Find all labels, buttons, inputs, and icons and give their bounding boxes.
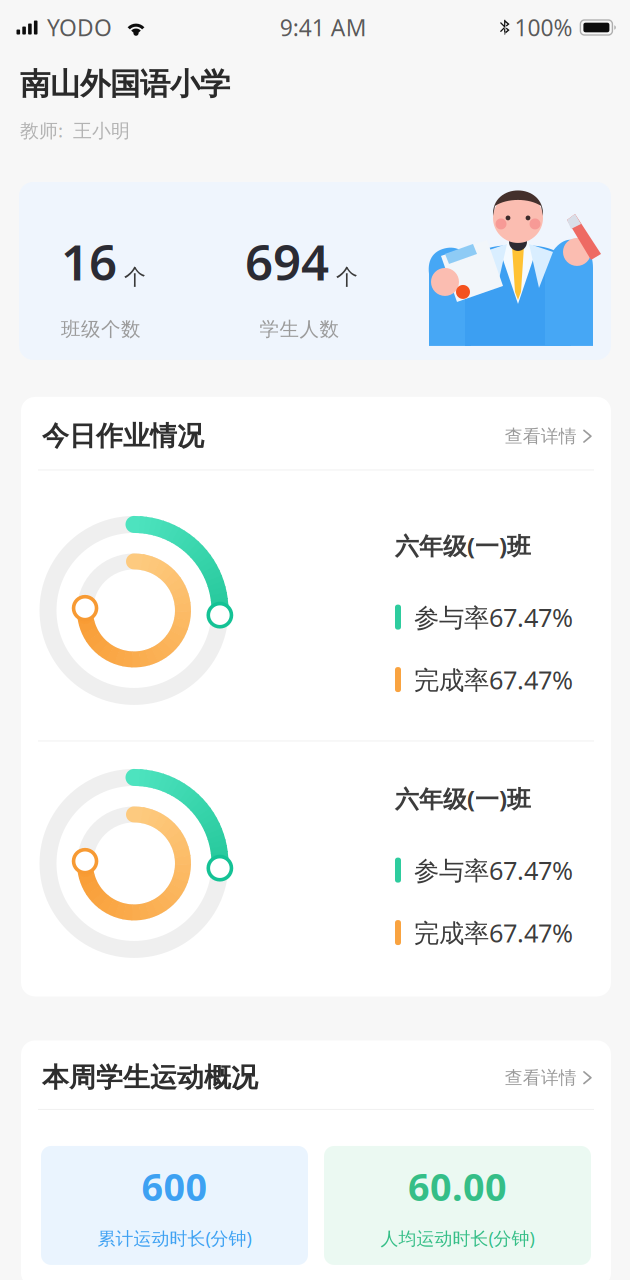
staticText: 南山外国语小学 — [20, 65, 230, 103]
staticText: 个 — [124, 263, 146, 291]
staticText: 完成率67.47% — [414, 662, 573, 697]
staticText: 教师: 王小明 — [20, 117, 130, 143]
staticText: 累计运动时长(分钟) — [97, 1226, 251, 1250]
staticText: 完成率67.47% — [414, 915, 573, 950]
staticText: 100% — [514, 12, 572, 43]
staticText: 查看详情 — [505, 425, 577, 447]
staticText: 9:41 AM — [280, 12, 367, 43]
staticText: 600 — [141, 1161, 207, 1212]
staticText: 学生人数 — [259, 317, 339, 341]
staticText: 六年级(一)班 — [395, 529, 531, 562]
staticText: 查看详情 — [505, 1066, 577, 1089]
staticText: 694 — [245, 228, 329, 295]
staticText: 人均运动时长(分钟) — [380, 1226, 534, 1250]
staticText: YODO — [47, 12, 112, 43]
staticText: 个 — [336, 263, 358, 291]
staticText: 班级个数 — [61, 317, 141, 341]
staticText: 60.00 — [408, 1161, 507, 1212]
staticText: 参与率67.47% — [414, 853, 573, 887]
button[interactable]: 查看详情 — [505, 1060, 592, 1095]
button[interactable]: 查看详情 — [505, 419, 592, 453]
staticText: 今日作业情况 — [42, 419, 204, 453]
staticText: 本周学生运动概况 — [42, 1061, 258, 1095]
staticText: 六年级(一)班 — [395, 782, 531, 815]
staticText: 16 — [61, 228, 117, 295]
staticText: 参与率67.47% — [414, 600, 573, 634]
